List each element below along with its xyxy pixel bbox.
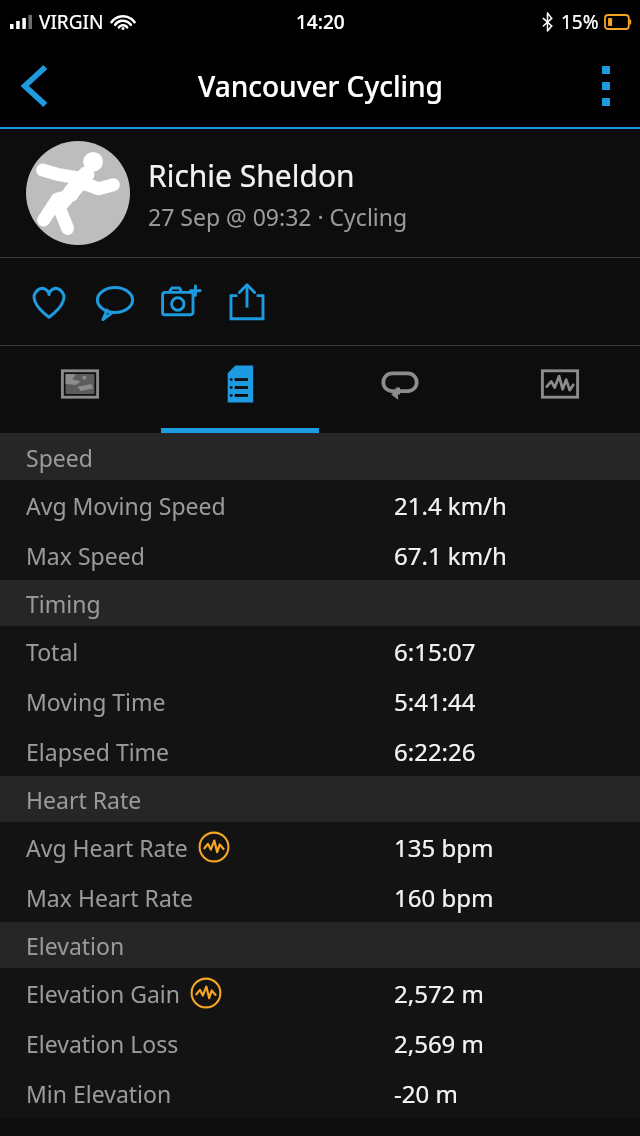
- button[interactable]: Add photo: [148, 269, 214, 335]
- button[interactable]: Moving Time: [0, 676, 640, 726]
- button[interactable]: Avg Moving Speed: [0, 480, 640, 530]
- staticText: 135 bpm: [394, 831, 494, 864]
- staticText: Vancouver Cycling: [198, 67, 443, 105]
- button[interactable]: Share: [214, 269, 280, 335]
- staticText: Max Heart Rate: [26, 882, 194, 913]
- staticText: Moving Time: [26, 686, 166, 717]
- staticText: 15%: [561, 9, 599, 35]
- staticText: Avg Moving Speed: [26, 490, 226, 521]
- staticText: Timing: [26, 588, 101, 619]
- button[interactable]: Elevation Gain: [0, 968, 640, 1018]
- staticText: 6:22:26: [394, 735, 476, 768]
- button[interactable]: Map: [0, 346, 160, 433]
- staticText: Min Elevation: [26, 1078, 172, 1109]
- staticText: 67.1 km/h: [394, 539, 507, 572]
- button[interactable]: Richie Sheldon: [0, 129, 640, 257]
- staticText: -20 m: [394, 1077, 458, 1110]
- button[interactable]: Total: [0, 626, 640, 676]
- staticText: Elevation Gain: [26, 978, 180, 1009]
- staticText: Max Speed: [26, 540, 145, 571]
- staticText: 27 Sep @ 09:32 · Cycling: [148, 201, 408, 232]
- button[interactable]: Elapsed Time: [0, 726, 640, 776]
- button[interactable]: Back: [6, 58, 62, 114]
- staticText: 6:15:07: [394, 635, 476, 668]
- staticText: 14:20: [296, 9, 345, 35]
- staticText: Avg Heart Rate: [26, 832, 188, 863]
- button[interactable]: Laps: [320, 346, 480, 433]
- button[interactable]: Min Elevation: [0, 1068, 640, 1118]
- staticText: Elevation: [26, 930, 125, 961]
- button[interactable]: Max Heart Rate: [0, 872, 640, 922]
- button[interactable]: Like: [16, 269, 82, 335]
- staticText: 160 bpm: [394, 881, 494, 914]
- button[interactable]: Charts: [480, 346, 640, 433]
- staticText: 21.4 km/h: [394, 489, 507, 522]
- button[interactable]: Elevation Loss: [0, 1018, 640, 1068]
- staticText: 2,569 m: [394, 1027, 485, 1060]
- button[interactable]: Comment: [82, 269, 148, 335]
- staticText: Speed: [26, 442, 93, 473]
- button[interactable]: Avg Heart Rate: [0, 822, 640, 872]
- button[interactable]: Details: [160, 346, 320, 433]
- staticText: 5:41:44: [394, 685, 476, 718]
- staticText: Total: [26, 636, 79, 667]
- staticText: Elapsed Time: [26, 736, 170, 767]
- button[interactable]: Max Speed: [0, 530, 640, 580]
- staticText: VIRGIN: [39, 9, 104, 35]
- staticText: 2,572 m: [394, 977, 485, 1010]
- staticText: Heart Rate: [26, 784, 142, 815]
- button[interactable]: More options: [580, 60, 632, 112]
- staticText: Richie Sheldon: [148, 155, 355, 196]
- staticText: Elevation Loss: [26, 1028, 179, 1059]
